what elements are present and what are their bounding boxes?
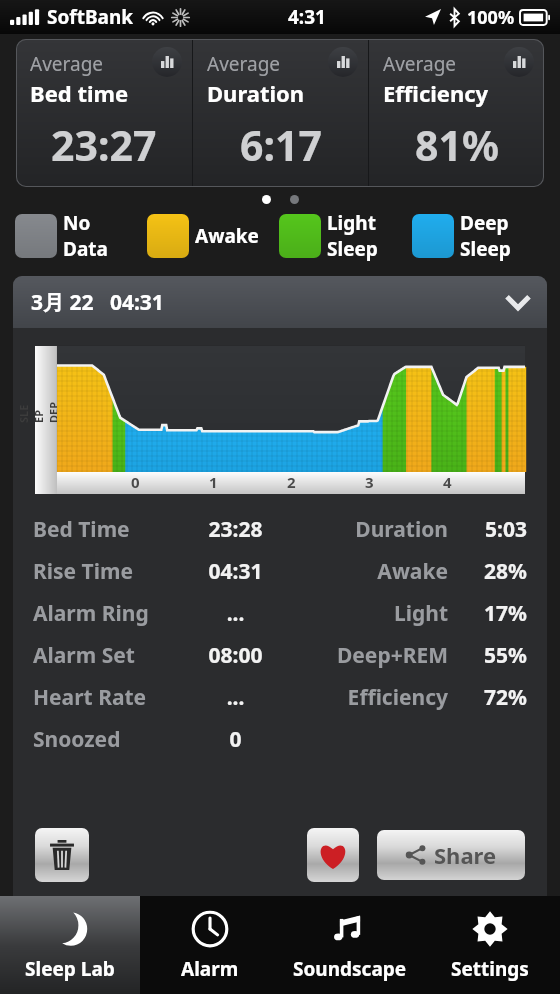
staticText: 23:27 (51, 117, 157, 173)
staticText: 1 (209, 472, 218, 492)
staticText: 72% (448, 683, 527, 712)
button[interactable]: Sleep Lab (0, 896, 140, 994)
staticText: Duration (290, 515, 448, 544)
staticText: 08:00 (181, 641, 290, 670)
button[interactable]: Snoozed (33, 718, 527, 760)
button[interactable]: Alarm Ring (33, 592, 527, 634)
button[interactable]: Heart Rate (33, 676, 527, 718)
button[interactable]: Favorite (307, 828, 359, 882)
staticText: Alarm (181, 956, 239, 982)
staticText: SLEEP DEPTH (16, 401, 76, 423)
staticText: ... (181, 683, 290, 712)
staticText: Light (327, 210, 376, 236)
staticText: Rise Time (33, 557, 181, 586)
staticText: 81% (415, 117, 499, 173)
staticText: 28% (448, 557, 527, 586)
button[interactable]: Deep (412, 210, 545, 262)
staticText: Sleep (460, 236, 511, 262)
button[interactable]: Average (193, 39, 368, 187)
button[interactable]: 3月 22 04:31 (13, 276, 547, 328)
staticText: 4 (443, 472, 452, 492)
staticText: Alarm Set (33, 641, 181, 670)
staticText: Efficiency (383, 78, 489, 108)
staticText: 4:31 (288, 4, 326, 30)
staticText: No (63, 210, 91, 236)
staticText: Sleep (327, 236, 378, 262)
staticText: 23:28 (181, 515, 290, 544)
staticText: Share (434, 840, 497, 870)
button[interactable]: Alarm Set (33, 634, 527, 676)
staticText: Awake (290, 557, 448, 586)
staticText: 0 (131, 472, 140, 492)
staticText: Snoozed (33, 725, 181, 754)
staticText: Heart Rate (33, 683, 181, 712)
button[interactable]: Chart (504, 47, 534, 77)
button[interactable]: No (15, 210, 147, 262)
staticText: 0 (181, 725, 290, 754)
staticText: Awake (195, 223, 259, 249)
staticText: Soundscape (293, 956, 407, 982)
button[interactable]: Share (377, 830, 525, 880)
staticText: 17% (448, 599, 527, 628)
staticText: 100% (467, 5, 515, 30)
button[interactable]: Rise Time (33, 550, 527, 592)
staticText: Settings (451, 956, 529, 982)
staticText: Duration (207, 78, 305, 108)
staticText: 04:31 (181, 557, 290, 586)
button[interactable]: Bed Time (33, 508, 527, 550)
staticText: Bed Time (33, 515, 181, 544)
staticText: Average (207, 51, 281, 77)
staticText: 2 (287, 472, 296, 492)
staticText: Average (30, 51, 104, 77)
button[interactable]: Alarm (140, 896, 280, 994)
button[interactable]: Chart (328, 47, 358, 77)
staticText: 55% (448, 641, 527, 670)
staticText: Data (63, 236, 108, 262)
staticText: 3 (365, 472, 374, 492)
button[interactable]: Awake (147, 210, 279, 262)
button[interactable]: Soundscape (280, 896, 420, 994)
button[interactable]: Chart (152, 47, 182, 77)
button[interactable]: Average (16, 39, 192, 187)
staticText: Efficiency (290, 683, 448, 712)
staticText: Average (383, 51, 457, 77)
staticText: Light (290, 599, 448, 628)
staticText: ... (181, 599, 290, 628)
staticText: SoftBank (47, 4, 134, 30)
button[interactable]: Delete (35, 828, 89, 882)
staticText: Sleep Lab (25, 956, 115, 982)
staticText: 5:03 (448, 515, 527, 544)
button[interactable]: Settings (420, 896, 560, 994)
staticText: Deep (460, 210, 509, 236)
staticText: Bed time (30, 78, 129, 108)
button[interactable]: Average (369, 39, 544, 187)
staticText: 6:17 (240, 117, 322, 173)
staticText: 3月 22 04:31 (31, 288, 164, 317)
staticText: Deep+REM (290, 641, 448, 670)
staticText: Alarm Ring (33, 599, 181, 628)
button[interactable]: Light (279, 210, 412, 262)
